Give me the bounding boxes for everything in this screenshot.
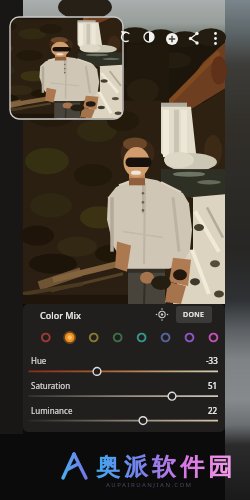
button[interactable] (10, 17, 123, 119)
button[interactable] (209, 31, 222, 44)
button[interactable] (135, 331, 148, 344)
button[interactable] (159, 331, 172, 344)
staticText: 51 (208, 380, 218, 390)
button[interactable]: Luminance (23, 405, 225, 429)
button[interactable] (111, 331, 124, 344)
staticText: Color Mix (40, 309, 81, 321)
button[interactable] (39, 331, 52, 344)
button[interactable]: Hue (23, 355, 225, 379)
staticText: Hue (31, 355, 47, 366)
button[interactable] (63, 331, 76, 344)
staticText: 奥派软件园 (94, 452, 234, 482)
button[interactable] (187, 31, 201, 45)
button[interactable] (119, 30, 133, 44)
button[interactable] (165, 32, 179, 46)
button[interactable] (150, 306, 174, 324)
staticText: AUPAIRUANJIAN.COM (106, 481, 193, 489)
button[interactable] (87, 331, 100, 344)
button[interactable] (142, 30, 156, 44)
button[interactable]: DONE (176, 306, 212, 323)
staticText: Saturation (31, 380, 71, 391)
staticText: -33 (206, 355, 218, 365)
staticText: DONE (183, 310, 205, 320)
button[interactable] (183, 331, 196, 344)
button[interactable]: Saturation (23, 380, 225, 404)
button[interactable] (207, 331, 220, 344)
staticText: Luminance (31, 405, 73, 416)
staticText: 22 (208, 405, 218, 415)
